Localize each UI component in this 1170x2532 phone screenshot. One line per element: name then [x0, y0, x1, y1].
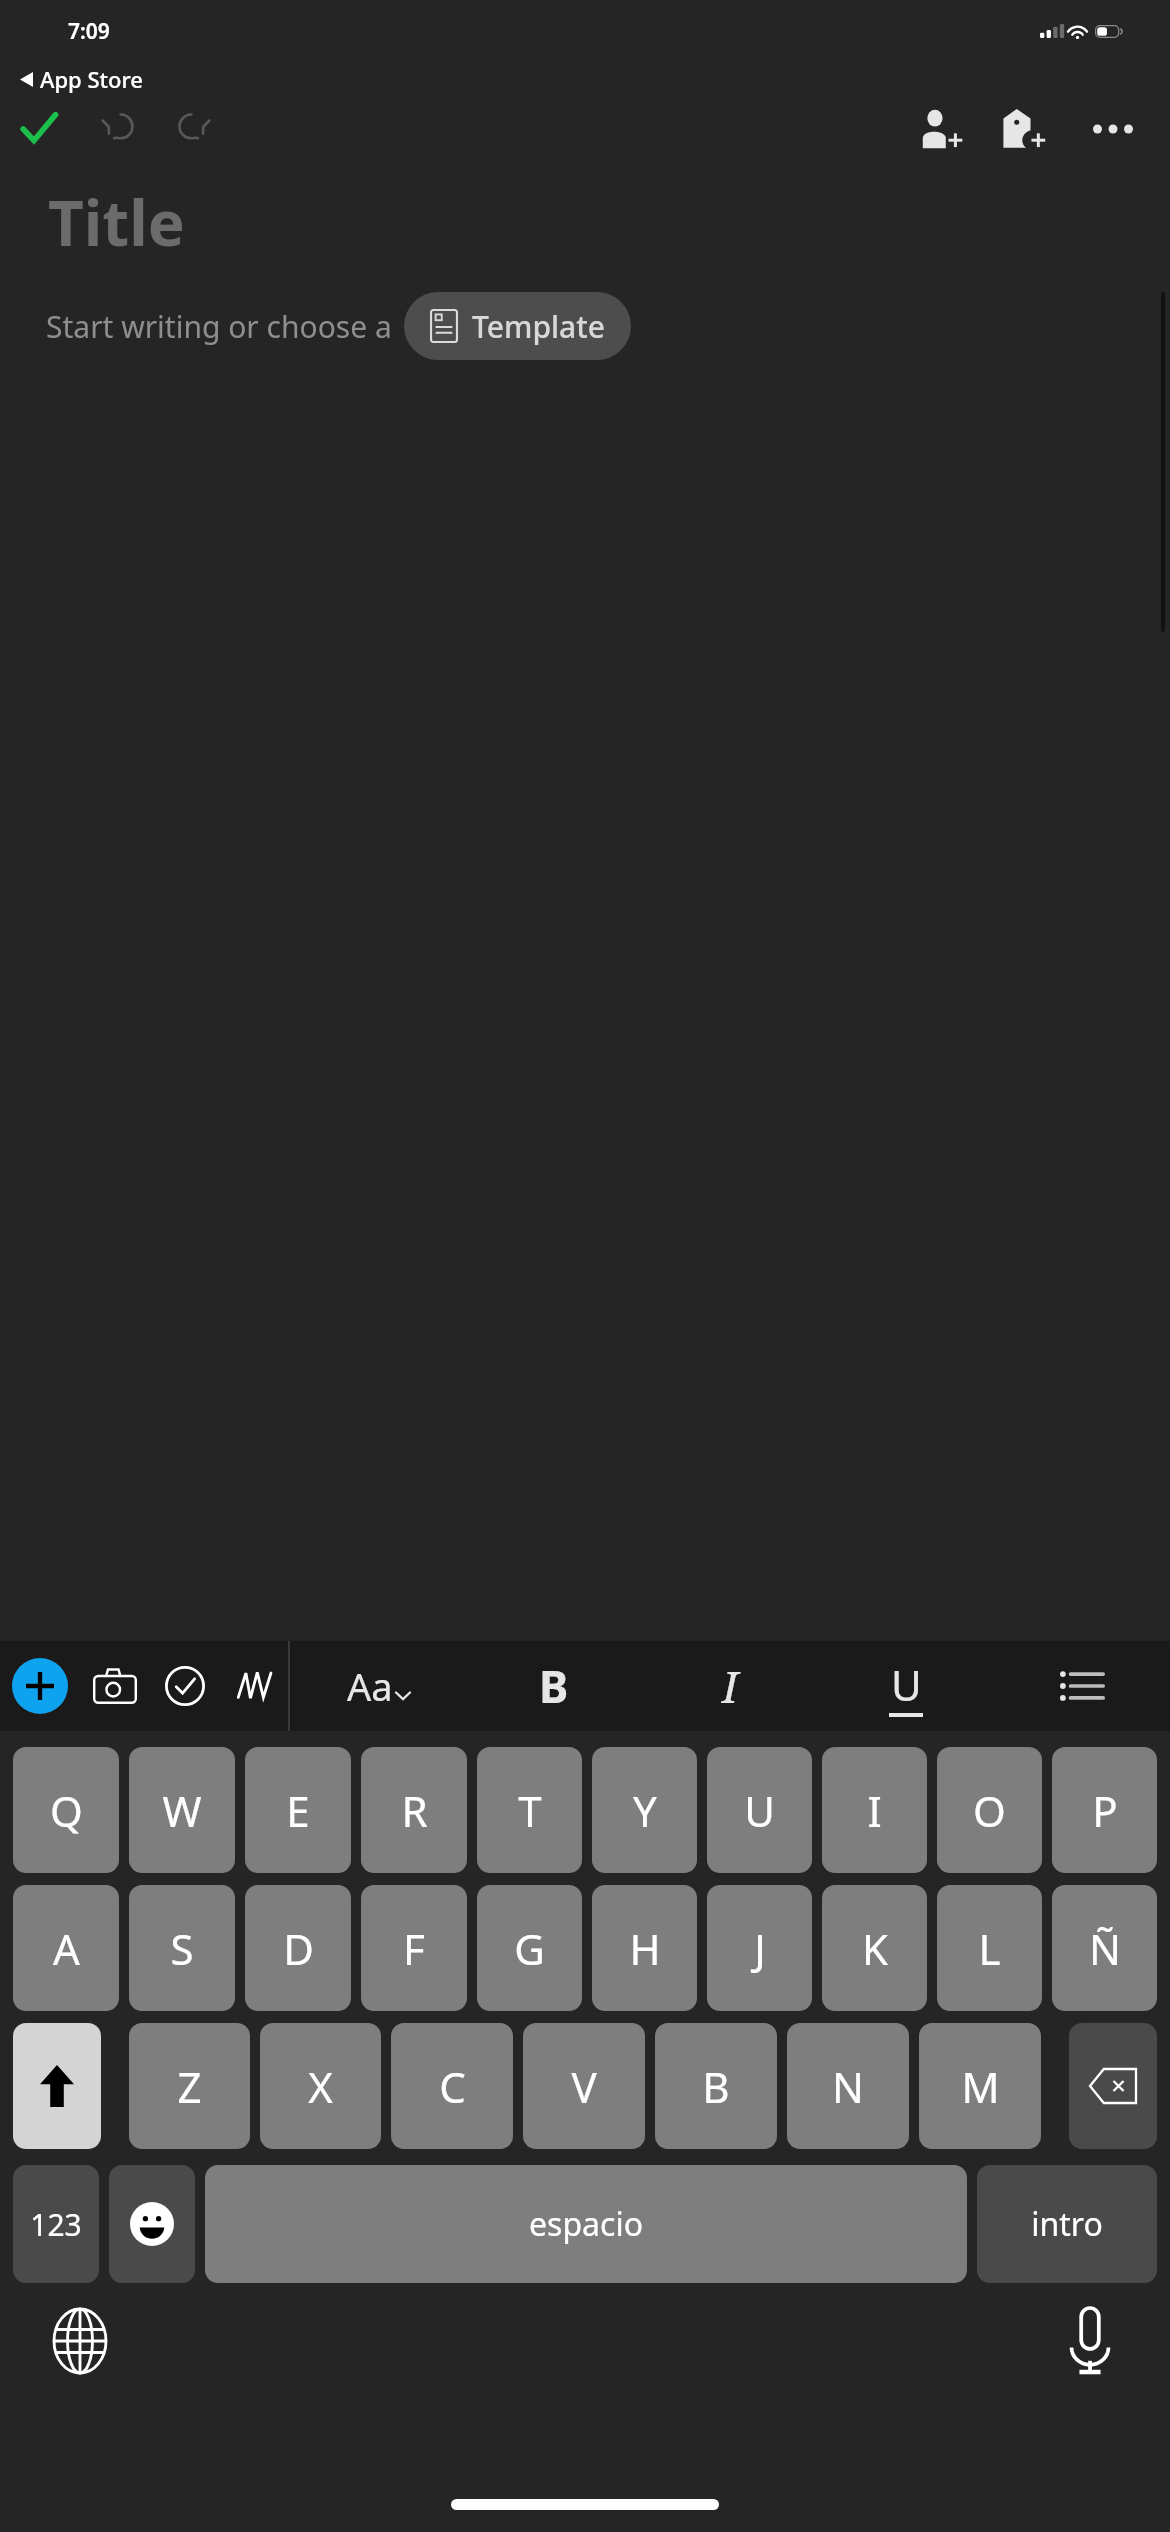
button[interactable]: Text style: [290, 1641, 466, 1731]
staticText: C: [439, 2058, 466, 2115]
button[interactable]: W: [129, 1747, 235, 1873]
button[interactable]: Add collaborator: [904, 100, 982, 158]
staticText: F: [403, 1920, 425, 1977]
button[interactable]: R: [361, 1747, 467, 1873]
staticText: I: [867, 1782, 882, 1839]
staticText: 123: [30, 2204, 82, 2245]
button[interactable]: App Store: [0, 58, 1170, 100]
button[interactable]: M: [919, 2023, 1041, 2149]
button[interactable]: L: [937, 1885, 1042, 2011]
staticText: I: [722, 1656, 739, 1716]
staticText: L: [978, 1920, 1001, 1977]
staticText: Aa: [347, 1660, 393, 1712]
staticText: M: [961, 2058, 1000, 2115]
button[interactable]: Change keyboard language: [34, 2295, 126, 2387]
button[interactable]: Bulleted list: [994, 1641, 1170, 1731]
staticText: Template: [472, 306, 605, 347]
button[interactable]: U: [707, 1747, 812, 1873]
staticText: N: [832, 2058, 864, 2115]
staticText: P: [1092, 1782, 1118, 1839]
staticText: Y: [633, 1782, 657, 1839]
button[interactable]: B: [655, 2023, 777, 2149]
button[interactable]: espacio: [205, 2165, 967, 2283]
button[interactable]: More options: [1074, 100, 1152, 158]
button[interactable]: Draw: [220, 1641, 290, 1731]
staticText: J: [754, 1920, 766, 1977]
button[interactable]: Undo: [78, 100, 156, 158]
staticText: B: [539, 1656, 569, 1716]
button[interactable]: Underline: [818, 1641, 994, 1731]
button[interactable]: Bold: [466, 1641, 642, 1731]
staticText: D: [283, 1920, 314, 1977]
button[interactable]: X: [260, 2023, 381, 2149]
button[interactable]: K: [822, 1885, 927, 2011]
button[interactable]: V: [523, 2023, 645, 2149]
button[interactable]: 123: [13, 2165, 99, 2283]
button[interactable]: O: [937, 1747, 1042, 1873]
button[interactable]: Camera: [80, 1641, 150, 1731]
button[interactable]: Dictate: [1044, 2295, 1136, 2387]
staticText: App Store: [40, 64, 143, 94]
button[interactable]: S: [129, 1885, 235, 2011]
button[interactable]: F: [361, 1885, 467, 2011]
staticText: R: [401, 1782, 428, 1839]
button[interactable]: Done: [0, 100, 78, 158]
staticText: T: [518, 1782, 542, 1839]
button[interactable]: Insert: [0, 1641, 80, 1731]
button[interactable]: N: [787, 2023, 909, 2149]
button[interactable]: Add note: [986, 100, 1064, 158]
button[interactable]: Backspace: [1069, 2023, 1157, 2149]
button[interactable]: T: [477, 1747, 582, 1873]
staticText: W: [162, 1782, 202, 1839]
staticText: 7:09: [68, 17, 110, 46]
button[interactable]: Title: [48, 180, 185, 264]
button[interactable]: A: [13, 1885, 119, 2011]
staticText: X: [308, 2058, 333, 2115]
button[interactable]: C: [391, 2023, 513, 2149]
staticText: U: [744, 1782, 775, 1839]
button[interactable]: I: [822, 1747, 927, 1873]
staticText: intro: [1031, 2202, 1103, 2246]
button[interactable]: E: [245, 1747, 351, 1873]
button[interactable]: J: [707, 1885, 812, 2011]
staticText: Z: [177, 2058, 202, 2115]
staticText: Q: [50, 1782, 83, 1839]
button[interactable]: intro: [977, 2165, 1157, 2283]
staticText: G: [514, 1920, 545, 1977]
button[interactable]: Y: [592, 1747, 697, 1873]
staticText: Start writing or choose a: [46, 306, 392, 347]
button[interactable]: Redo: [156, 100, 234, 158]
button[interactable]: Q: [13, 1747, 119, 1873]
button[interactable]: G: [477, 1885, 582, 2011]
button[interactable]: Template: [404, 292, 631, 360]
button[interactable]: Shift: [13, 2023, 101, 2149]
staticText: A: [53, 1920, 80, 1977]
button[interactable]: Emoji: [109, 2165, 195, 2283]
button[interactable]: Z: [129, 2023, 250, 2149]
button[interactable]: Italic: [642, 1641, 818, 1731]
staticText: S: [170, 1920, 194, 1977]
button[interactable]: Checklist: [150, 1641, 220, 1731]
staticText: U: [891, 1656, 922, 1713]
button[interactable]: P: [1052, 1747, 1157, 1873]
button[interactable]: Ñ: [1052, 1885, 1157, 2011]
staticText: O: [973, 1782, 1006, 1839]
staticText: Ñ: [1089, 1920, 1121, 1977]
button[interactable]: H: [592, 1885, 697, 2011]
button[interactable]: D: [245, 1885, 351, 2011]
staticText: V: [571, 2058, 597, 2115]
staticText: H: [629, 1920, 661, 1977]
staticText: E: [286, 1782, 310, 1839]
staticText: B: [702, 2058, 730, 2115]
staticText: K: [862, 1920, 888, 1977]
staticText: espacio: [529, 2202, 643, 2246]
